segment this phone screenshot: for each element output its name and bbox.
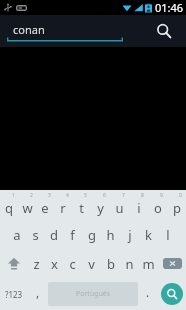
button[interactable]: . (139, 278, 157, 310)
staticText: l (166, 226, 170, 244)
button[interactable]: z (27, 249, 45, 278)
button[interactable]: l (158, 220, 177, 249)
staticText: 7 (122, 192, 125, 199)
staticText: n (125, 255, 134, 273)
staticText: h (106, 226, 115, 244)
button[interactable]: a (8, 220, 26, 249)
button[interactable]: k (139, 220, 158, 249)
button[interactable]: j (120, 220, 139, 249)
button[interactable]: 8 (129, 191, 148, 220)
button[interactable]: conan (7, 20, 123, 42)
button[interactable]: s (26, 220, 44, 249)
button[interactable]: 1 (0, 191, 18, 220)
button[interactable]: Search (150, 17, 178, 45)
staticText: r (60, 199, 66, 217)
staticText: ?123 (5, 289, 23, 300)
staticText: Português (76, 289, 111, 299)
button[interactable]: v (82, 249, 101, 278)
button[interactable]: 9 (148, 191, 167, 220)
staticText: v (88, 255, 95, 273)
button[interactable]: x (45, 249, 63, 278)
staticText: 4 (66, 192, 69, 199)
staticText: 1 (12, 192, 15, 199)
button[interactable]: , (29, 278, 47, 310)
staticText: conan (13, 22, 45, 37)
staticText: t (79, 199, 84, 217)
staticText: 2 (30, 192, 33, 199)
button[interactable]: f (63, 220, 82, 249)
button[interactable]: Backspace (158, 249, 186, 278)
button[interactable]: Space (48, 282, 138, 306)
button[interactable]: g (82, 220, 101, 249)
button[interactable]: Shift (0, 249, 27, 278)
button[interactable]: h (101, 220, 120, 249)
staticText: x (51, 255, 58, 273)
button[interactable]: d (44, 220, 63, 249)
staticText: k (145, 226, 152, 244)
staticText: d (50, 226, 58, 244)
button[interactable]: 3 (36, 191, 54, 220)
staticText: u (115, 199, 124, 217)
button[interactable]: 5 (72, 191, 91, 220)
staticText: g (88, 226, 96, 244)
staticText: . (146, 284, 150, 300)
staticText: z (33, 255, 40, 273)
staticText: j (128, 226, 132, 244)
button[interactable]: Search (161, 283, 183, 305)
staticText: e (41, 199, 49, 217)
staticText: b (107, 255, 115, 273)
staticText: 0 (179, 192, 182, 199)
staticText: y (97, 199, 104, 217)
button[interactable]: b (101, 249, 120, 278)
button[interactable]: 7 (110, 191, 129, 220)
button[interactable]: 6 (91, 191, 110, 220)
staticText: 9 (160, 192, 163, 199)
staticText: 5 (84, 192, 87, 199)
staticText: 8 (141, 192, 144, 199)
staticText: s (32, 226, 39, 244)
staticText: 01:46 (155, 0, 184, 15)
button[interactable]: ?123 (0, 278, 29, 310)
staticText: m (142, 255, 155, 273)
staticText: 3 (48, 192, 51, 199)
button[interactable]: c (63, 249, 82, 278)
staticText: i (137, 199, 141, 217)
button[interactable]: 0 (167, 191, 186, 220)
button[interactable]: m (139, 249, 158, 278)
staticText: , (36, 284, 40, 300)
button[interactable]: 2 (18, 191, 36, 220)
staticText: o (154, 199, 162, 217)
staticText: 6 (103, 192, 106, 199)
button[interactable]: 4 (54, 191, 72, 220)
staticText: w (22, 199, 33, 217)
staticText: c (69, 255, 76, 273)
staticText: q (5, 199, 13, 217)
button[interactable]: n (120, 249, 139, 278)
staticText: p (173, 199, 181, 217)
staticText: a (13, 226, 21, 244)
staticText: f (70, 226, 75, 244)
